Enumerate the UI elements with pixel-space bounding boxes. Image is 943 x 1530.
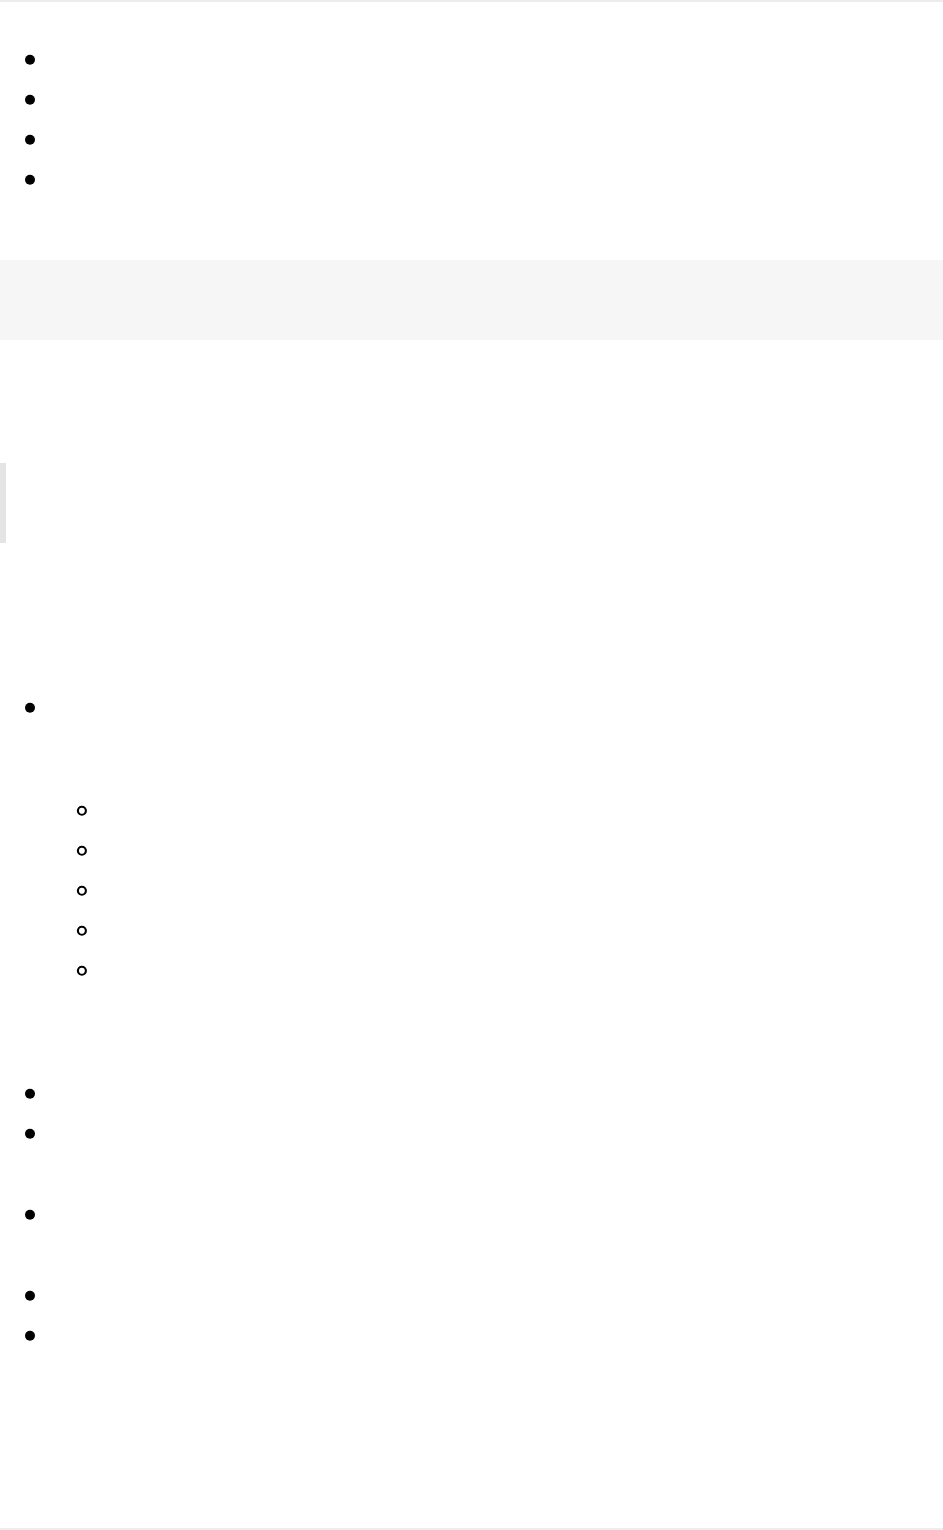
- button[interactable]: Sub item three: [0, 870, 943, 910]
- button[interactable]: List item three: [0, 119, 943, 159]
- button[interactable]: List item two: [0, 79, 943, 119]
- button[interactable]: Sub item two: [0, 830, 943, 870]
- button[interactable]: Sub item one: [0, 790, 943, 830]
- button[interactable]: List item one: [0, 39, 943, 79]
- button[interactable]: Final item one: [0, 1073, 943, 1113]
- button[interactable]: Sub item four: [0, 910, 943, 950]
- button[interactable]: Final item three: [0, 1194, 943, 1275]
- button[interactable]: List item four: [0, 159, 943, 199]
- button[interactable]: Final item two: [0, 1113, 943, 1194]
- button[interactable]: Sub item five: [0, 950, 943, 990]
- button[interactable]: Final item five: [0, 1315, 943, 1355]
- button[interactable]: Final item four: [0, 1275, 943, 1315]
- button[interactable]: Section item: [0, 687, 943, 727]
